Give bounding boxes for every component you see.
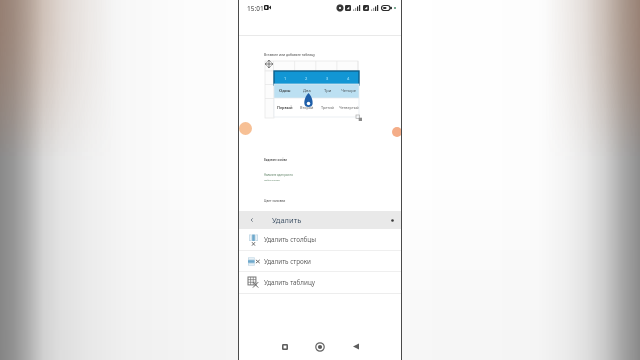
staticText: 1: [284, 76, 287, 81]
staticText: Удалить: [272, 215, 302, 225]
button[interactable]: Удалить таблицу: [239, 272, 401, 293]
staticText: Удалить таблицу: [264, 278, 316, 287]
staticText: Цвет заливки: [264, 199, 286, 203]
staticText: Первый: [277, 105, 293, 110]
staticText: Третий: [321, 105, 334, 110]
staticText: Выделите ячейки: [264, 158, 287, 161]
button[interactable]: Back: [239, 211, 264, 229]
button[interactable]: Recent apps: [275, 337, 294, 356]
staticText: Четвертый: [339, 105, 359, 110]
staticText: 15:01: [247, 4, 264, 13]
button[interactable]: Back: [346, 337, 365, 356]
staticText: Второй: [300, 105, 314, 110]
button[interactable]: More options: [383, 211, 401, 229]
button[interactable]: Home: [310, 337, 329, 356]
staticText: Четыре: [341, 88, 357, 94]
button[interactable]: Удалить столбцы: [239, 229, 401, 250]
staticText: Удалить строки: [264, 257, 312, 266]
staticText: Удалить столбцы: [264, 235, 316, 244]
staticText: любой ячейке: [264, 179, 280, 182]
staticText: Нажмите один раз по: [264, 173, 293, 177]
staticText: Три: [324, 88, 332, 94]
staticText: 2: [305, 76, 308, 81]
button[interactable]: Удалить строки: [239, 251, 401, 271]
staticText: Вставьте или добавьте таблицу: [264, 52, 316, 56]
staticText: 4: [347, 76, 350, 81]
staticText: 3: [326, 76, 329, 81]
staticText: Два: [303, 88, 311, 94]
staticText: Один: [279, 88, 291, 94]
